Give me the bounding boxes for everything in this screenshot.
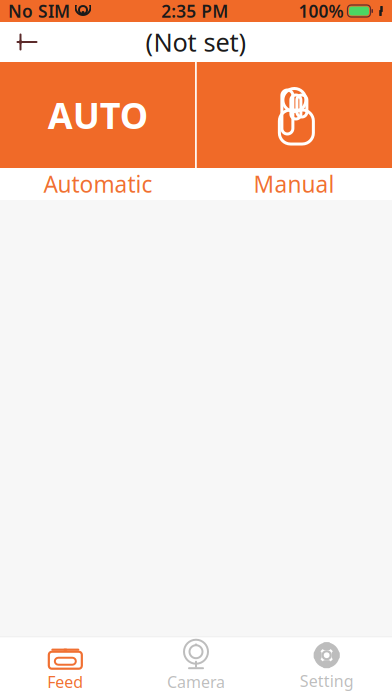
staticText: Feed (47, 671, 83, 692)
staticText: 2:35 PM (161, 0, 228, 22)
staticText: AUTO (48, 91, 148, 139)
button[interactable]: Camera (131, 637, 261, 695)
staticText: Automatic (43, 169, 152, 199)
button[interactable]: Setting (261, 637, 392, 695)
staticText: Camera (167, 671, 225, 692)
staticText: Setting (300, 670, 354, 691)
button[interactable]: Feed (0, 637, 131, 695)
staticText: 100% (298, 0, 343, 22)
button[interactable]: Automatic mode (0, 62, 195, 168)
button[interactable]: Back (0, 20, 54, 64)
staticText: Manual (253, 169, 334, 199)
staticText: (Not set) (145, 25, 246, 59)
staticText: No SIM (8, 0, 70, 22)
button[interactable]: Manual mode (197, 62, 392, 168)
